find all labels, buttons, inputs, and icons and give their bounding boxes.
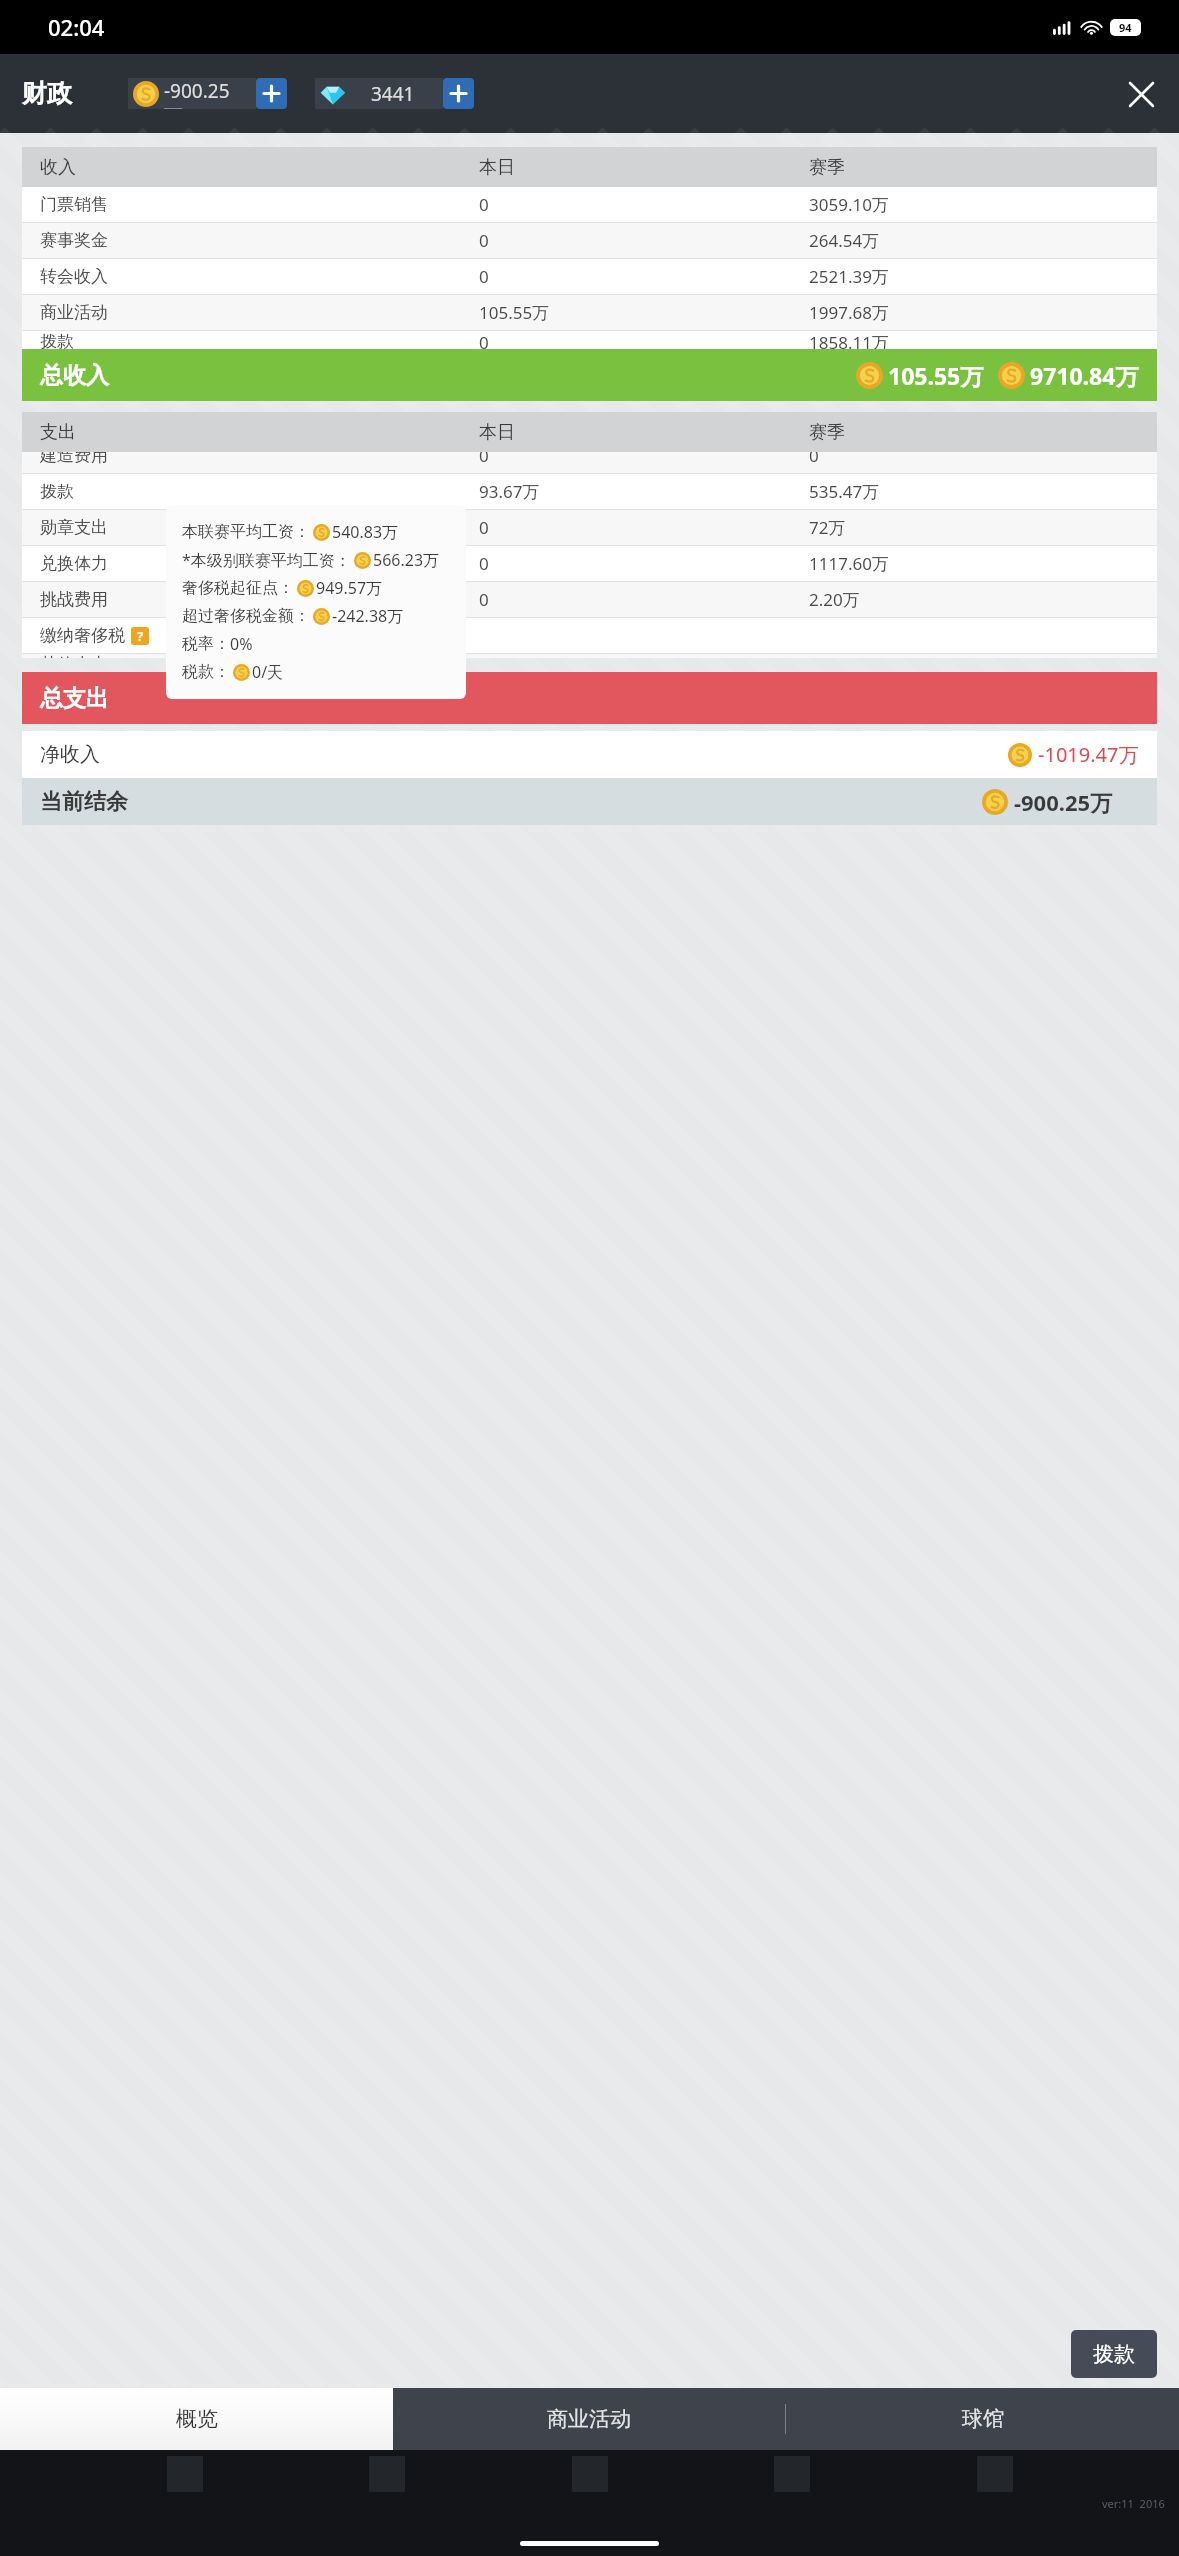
staticText: 兑换体力 bbox=[40, 553, 479, 574]
button[interactable]: 商业活动 bbox=[393, 2388, 785, 2450]
staticText: 税率： bbox=[182, 634, 230, 654]
staticText: ver:11 2016 bbox=[1102, 2496, 1165, 2511]
staticText: 商业活动 bbox=[40, 302, 479, 323]
staticText: 球馆 bbox=[962, 2406, 1004, 2432]
button[interactable]: 3441 bbox=[320, 78, 435, 109]
button[interactable]: -900.25万 bbox=[133, 78, 248, 109]
staticText: 0 bbox=[479, 229, 809, 252]
button[interactable]: Info bbox=[131, 627, 149, 645]
staticText: 净收入 bbox=[40, 742, 100, 767]
staticText: 拨款 bbox=[40, 481, 479, 502]
staticText: 本联赛平均工资： bbox=[182, 522, 310, 542]
staticText: 2521.39万 bbox=[809, 265, 1139, 288]
staticText: 拨款 bbox=[40, 331, 479, 349]
staticText: 总收入 bbox=[40, 361, 109, 390]
staticText: 拨款 bbox=[1093, 2341, 1135, 2367]
staticText: 概览 bbox=[176, 2406, 218, 2432]
staticText: 0 bbox=[479, 193, 809, 216]
staticText: 1117.60万 bbox=[809, 552, 1139, 575]
staticText: 0 bbox=[479, 516, 809, 539]
button[interactable]: 净收入 bbox=[40, 731, 1139, 778]
staticText: 转会收入 bbox=[40, 266, 479, 287]
staticText: 3059.10万 bbox=[809, 193, 1139, 216]
staticText: 1858.11万 bbox=[809, 331, 1139, 349]
staticText: 105.55万 bbox=[479, 301, 809, 324]
staticText: 赛季 bbox=[809, 421, 1139, 444]
staticText: 其他支出 bbox=[40, 654, 479, 658]
staticText: 缴纳奢侈税 bbox=[40, 625, 125, 646]
staticText: 264.54万 bbox=[809, 229, 1139, 252]
staticText: 540.83万 bbox=[332, 521, 399, 543]
staticText: -900.25万 bbox=[164, 78, 248, 109]
button[interactable]: 概览 bbox=[0, 2388, 393, 2450]
button[interactable]: 拨款 bbox=[1071, 2330, 1157, 2378]
staticText: 0 bbox=[809, 452, 1139, 467]
staticText: 税款： bbox=[182, 662, 230, 682]
staticText: 赛季 bbox=[809, 156, 1139, 179]
staticText: 9710.84万 bbox=[1030, 360, 1139, 391]
staticText: 3441 bbox=[371, 81, 415, 107]
button[interactable]: 球馆 bbox=[786, 2388, 1179, 2450]
staticText: 超过奢侈税金额： bbox=[182, 606, 310, 626]
staticText: 门票销售 bbox=[40, 194, 479, 215]
staticText: 0 bbox=[479, 588, 809, 611]
staticText: 535.47万 bbox=[809, 480, 1139, 503]
staticText: 1997.68万 bbox=[809, 301, 1139, 324]
staticText: 566.23万 bbox=[373, 549, 440, 571]
staticText: 收入 bbox=[40, 156, 479, 179]
staticText: 0 bbox=[479, 331, 809, 349]
staticText: 支出 bbox=[40, 421, 479, 444]
button[interactable]: Add bbox=[256, 78, 287, 109]
staticText: 挑战费用 bbox=[40, 589, 479, 610]
staticText: 94 bbox=[1119, 20, 1132, 35]
staticText: 0 bbox=[479, 265, 809, 288]
staticText: 02:04 bbox=[48, 12, 105, 42]
staticText: 2.20万 bbox=[809, 588, 1139, 611]
staticText: 勋章支出 bbox=[40, 517, 479, 538]
staticText: 93.67万 bbox=[479, 480, 809, 503]
staticText: 财政 bbox=[22, 78, 72, 109]
staticText: 本日 bbox=[479, 421, 809, 444]
staticText: 72万 bbox=[809, 516, 1139, 539]
button[interactable]: Close bbox=[1119, 72, 1163, 116]
staticText: 奢侈税起征点： bbox=[182, 578, 294, 598]
staticText: 0% bbox=[230, 633, 253, 655]
staticText: 0/天 bbox=[252, 661, 284, 683]
staticText: 总支出 bbox=[40, 684, 109, 713]
staticText: -242.38万 bbox=[332, 605, 404, 627]
button[interactable]: Add bbox=[443, 78, 474, 109]
staticText: 0 bbox=[479, 552, 809, 575]
staticText: 本日 bbox=[479, 156, 809, 179]
staticText: 商业活动 bbox=[547, 2406, 631, 2432]
staticText: 赛事奖金 bbox=[40, 230, 479, 251]
staticText: 105.55万 bbox=[888, 360, 984, 391]
staticText: -1019.47万 bbox=[1038, 741, 1139, 768]
staticText: 0 bbox=[479, 452, 809, 467]
staticText: *本级别联赛平均工资： bbox=[182, 549, 351, 571]
staticText: -900.25万 bbox=[1014, 787, 1113, 817]
staticText: 949.57万 bbox=[316, 577, 383, 599]
staticText: 当前结余 bbox=[40, 788, 128, 816]
staticText: ? bbox=[137, 627, 144, 645]
staticText: 建造费用 bbox=[40, 452, 479, 466]
button[interactable]: 当前结余 bbox=[40, 778, 1139, 825]
